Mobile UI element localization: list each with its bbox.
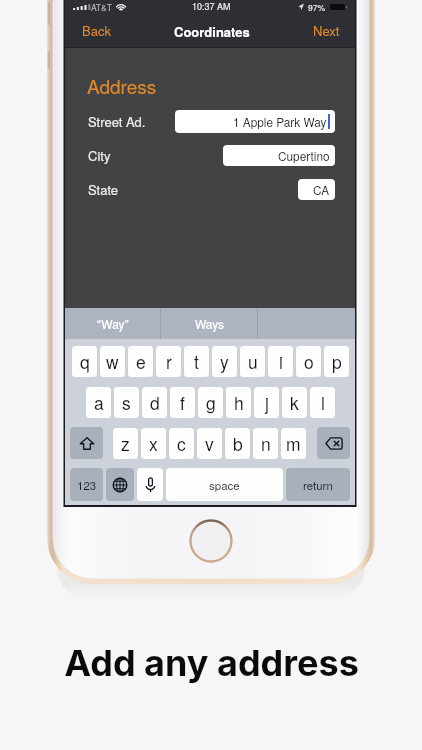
button[interactable]: Dictation [137, 468, 163, 501]
button[interactable]: y [212, 346, 237, 377]
button[interactable]: r [156, 346, 181, 377]
button[interactable]: Switch keyboard [106, 468, 134, 501]
button[interactable]: “Way” [65, 308, 161, 339]
button[interactable]: z [113, 428, 138, 459]
button[interactable]: Next [303, 18, 355, 43]
button[interactable]: n [253, 428, 278, 459]
staticText: 97% [308, 1, 326, 13]
button[interactable]: Back [65, 18, 121, 43]
staticText: m [286, 431, 301, 456]
button[interactable]: j [254, 387, 279, 418]
staticText: r [166, 349, 172, 374]
staticText: g [206, 390, 216, 415]
staticText: c [177, 431, 186, 456]
button[interactable]: a [86, 387, 111, 418]
staticText: l [321, 390, 325, 415]
staticText: k [290, 390, 299, 415]
staticText: j [265, 390, 269, 415]
staticText: x [149, 431, 158, 456]
staticText: p [332, 349, 342, 374]
staticText: 1 Apple Park Way [233, 113, 327, 130]
button[interactable]: i [268, 346, 293, 377]
button[interactable]: h [226, 387, 251, 418]
staticText: w [106, 349, 119, 374]
button[interactable]: q [72, 346, 97, 377]
staticText: i [279, 349, 283, 374]
staticText: Add any address [64, 641, 359, 685]
button[interactable]: e [128, 346, 153, 377]
button[interactable]: space [166, 468, 283, 501]
button[interactable]: w [100, 346, 125, 377]
button[interactable]: u [240, 346, 265, 377]
staticText: AT&T [91, 1, 112, 13]
staticText: a [94, 390, 104, 415]
staticText: s [122, 390, 131, 415]
button[interactable]: s [114, 387, 139, 418]
button[interactable]: Shift [70, 427, 103, 459]
staticText: f [180, 390, 185, 415]
button[interactable]: 1 Apple Park Way [175, 110, 335, 133]
button[interactable]: 123 [70, 468, 103, 501]
staticText: b [233, 431, 243, 456]
staticText: 10:37 AM [192, 0, 231, 13]
button[interactable]: return [286, 468, 350, 501]
button[interactable]: f [170, 387, 195, 418]
staticText: v [205, 431, 214, 456]
staticText: City [88, 146, 111, 165]
button[interactable]: v [197, 428, 222, 459]
staticText: Back [82, 21, 111, 40]
button[interactable]: b [225, 428, 250, 459]
button[interactable]: m [281, 428, 306, 459]
button[interactable]: l [310, 387, 335, 418]
staticText: space [209, 477, 240, 493]
staticText: Next [313, 21, 340, 40]
button[interactable]: Backspace [317, 427, 350, 459]
button[interactable]: k [282, 387, 307, 418]
staticText: Ways [195, 315, 225, 332]
button[interactable]: t [184, 346, 209, 377]
button[interactable]: p [324, 346, 349, 377]
staticText: n [261, 431, 271, 456]
button[interactable]: Ways [161, 308, 258, 339]
staticText: u [248, 349, 258, 374]
staticText: y [220, 349, 229, 374]
button[interactable]: o [296, 346, 321, 377]
button[interactable]: d [142, 387, 167, 418]
staticText: CA [313, 181, 330, 198]
staticText: State [88, 180, 119, 199]
staticText: return [303, 477, 333, 493]
button[interactable]: c [169, 428, 194, 459]
button[interactable]: Cupertino [223, 145, 335, 166]
staticText: t [194, 349, 199, 374]
button[interactable]: CA [298, 179, 335, 200]
staticText: Address [87, 72, 157, 94]
staticText: Coordinates [174, 22, 250, 41]
staticText: d [150, 390, 160, 415]
button[interactable]: x [141, 428, 166, 459]
staticText: z [121, 431, 130, 456]
staticText: Cupertino [278, 147, 330, 164]
staticText: e [136, 349, 146, 374]
staticText: o [304, 349, 314, 374]
staticText: q [80, 349, 90, 374]
staticText: 123 [77, 477, 97, 493]
staticText: Street Ad. [88, 112, 146, 131]
staticText: h [234, 390, 244, 415]
button[interactable]: g [198, 387, 223, 418]
staticText: “Way” [97, 315, 129, 332]
